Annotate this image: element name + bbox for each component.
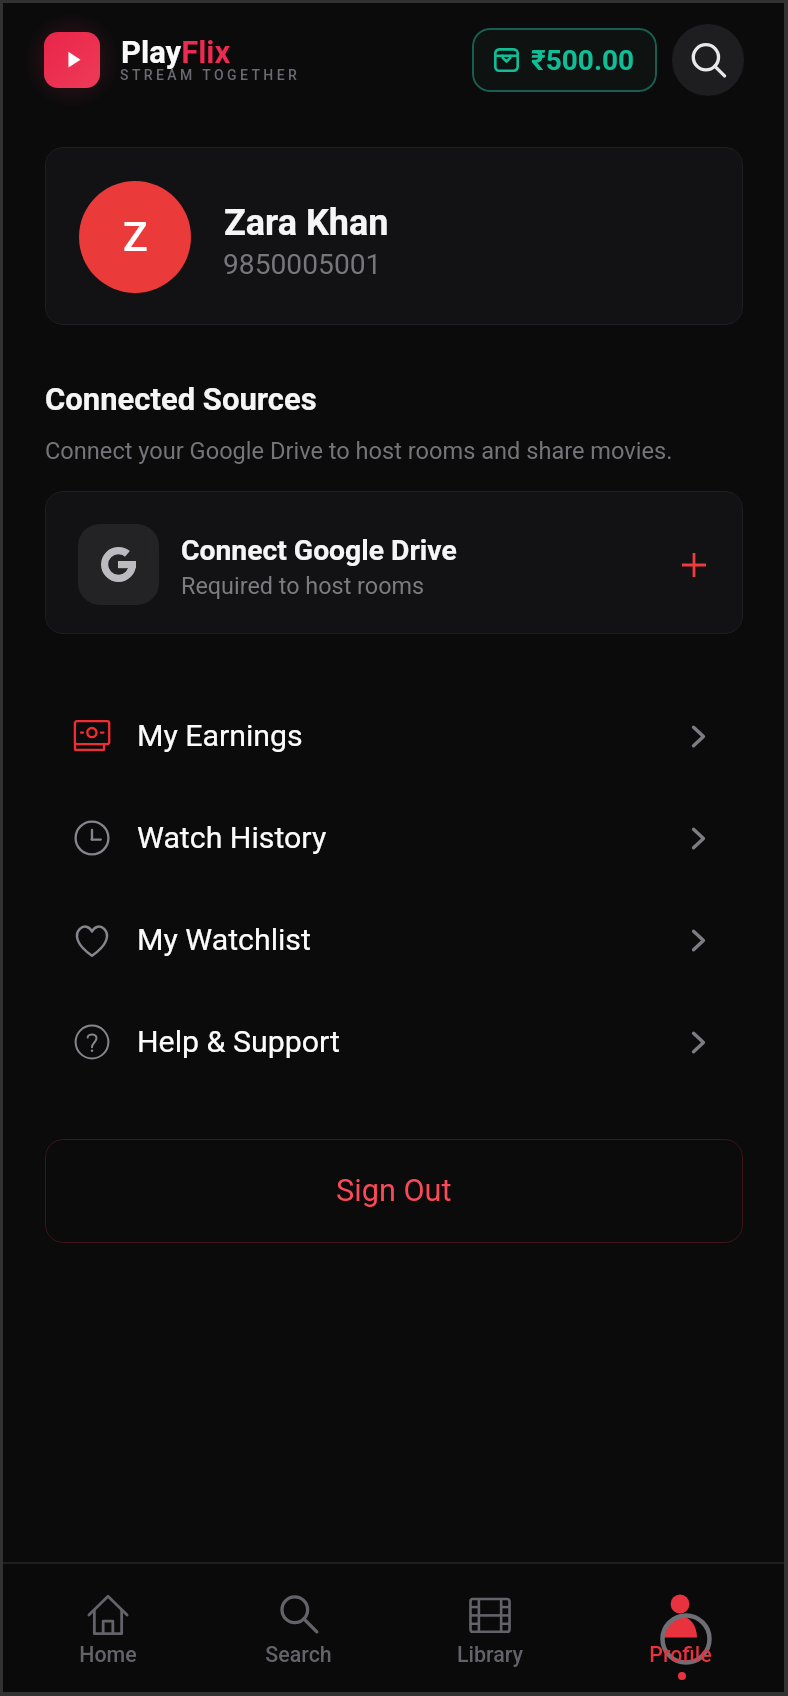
button[interactable]: Z — [45, 147, 743, 325]
staticText: Connect Google Drive — [181, 534, 457, 567]
staticText: Library — [457, 1642, 523, 1667]
button[interactable]: Search — [203, 1562, 394, 1696]
staticText: 9850005001 — [223, 248, 382, 281]
button[interactable]: PlayFlix logo — [44, 32, 100, 88]
button[interactable]: My Earnings — [45, 685, 743, 787]
button[interactable]: Watch History — [45, 787, 743, 889]
button[interactable]: Sign Out — [45, 1139, 743, 1243]
staticText: Sign Out — [336, 1173, 452, 1209]
staticText: Z — [123, 213, 148, 261]
staticText: Zara Khan — [224, 202, 389, 244]
button[interactable]: Profile — [585, 1562, 776, 1696]
staticText: Required to host rooms — [181, 572, 425, 599]
button[interactable]: My Watchlist — [45, 889, 743, 991]
staticText: My Watchlist — [137, 922, 311, 958]
staticText: ₹500.00 — [531, 44, 635, 77]
staticText: Connect your Google Drive to host rooms … — [45, 437, 673, 465]
button[interactable]: Home — [12, 1562, 203, 1696]
staticText: Home — [79, 1642, 137, 1667]
button[interactable]: Search — [672, 24, 744, 96]
staticText: STREAM TOGETHER — [120, 67, 301, 83]
button[interactable]: ₹500.00 — [472, 28, 657, 92]
button[interactable]: Library — [394, 1562, 585, 1696]
button[interactable]: Connect — [670, 541, 718, 589]
staticText: Profile — [649, 1642, 712, 1667]
staticText: Connected Sources — [45, 381, 317, 417]
button[interactable]: Connect Google Drive — [45, 491, 743, 634]
staticText: Search — [265, 1642, 332, 1667]
staticText: PlayFlix — [121, 34, 231, 70]
button[interactable]: Help & Support — [45, 991, 743, 1093]
staticText: Help & Support — [137, 1024, 340, 1060]
staticText: My Earnings — [137, 718, 303, 754]
staticText: Watch History — [137, 820, 327, 856]
